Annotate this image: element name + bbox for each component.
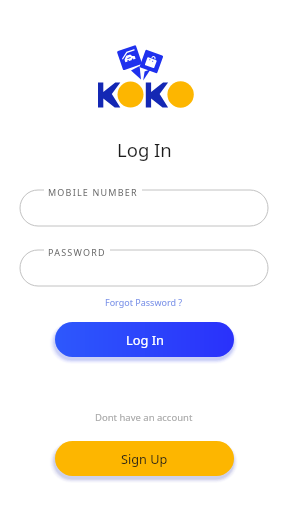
staticText: Dont have an account: [95, 411, 193, 424]
button[interactable]: Log In: [55, 322, 234, 357]
button[interactable]: Forgot Password ?: [103, 295, 185, 309]
staticText: Sign Up: [121, 450, 168, 467]
button[interactable]: MOBILE NUMBER: [20, 190, 268, 226]
button[interactable]: Sign Up: [55, 441, 234, 476]
staticText: Forgot Password ?: [105, 296, 183, 308]
button[interactable]: PASSWORD: [20, 250, 268, 286]
staticText: Log In: [126, 331, 164, 348]
staticText: MOBILE NUMBER: [48, 186, 138, 198]
staticText: PASSWORD: [48, 246, 106, 258]
staticText: Log In: [117, 137, 172, 162]
